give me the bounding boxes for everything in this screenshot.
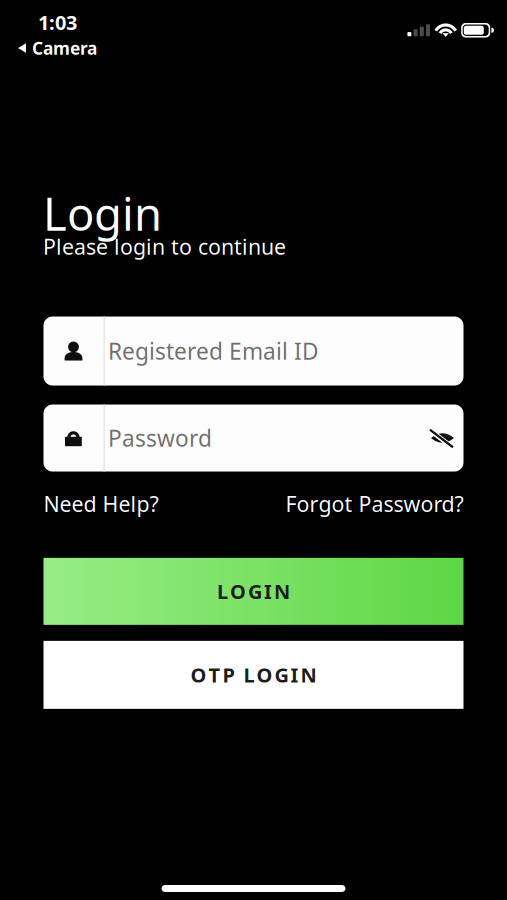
staticText: Login bbox=[43, 183, 162, 243]
staticText: Forgot Password? bbox=[285, 489, 463, 518]
staticText: Registered Email ID bbox=[108, 336, 319, 366]
staticText: Password bbox=[108, 423, 212, 453]
staticText: Camera bbox=[32, 37, 97, 60]
button[interactable]: L O G I N bbox=[43, 558, 463, 625]
staticText: Please login to continue bbox=[43, 232, 286, 260]
staticText: 1:03 bbox=[38, 9, 77, 36]
staticText: Need Help? bbox=[43, 489, 158, 518]
staticText: L O G I N bbox=[217, 578, 290, 605]
button[interactable]: O T P L O G I N bbox=[43, 641, 463, 709]
button[interactable]: Forgot Password? bbox=[285, 489, 463, 518]
button[interactable]: Need Help? bbox=[43, 489, 158, 518]
staticText: O T P L O G I N bbox=[190, 662, 316, 688]
